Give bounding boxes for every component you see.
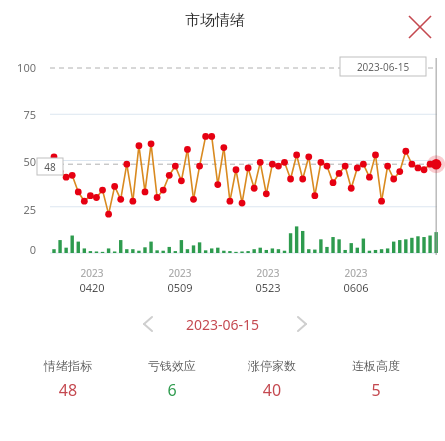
button[interactable]: 连板高度 xyxy=(328,358,424,408)
button[interactable]: 亏钱效应 xyxy=(124,358,220,408)
staticText: 100 xyxy=(4,60,36,75)
staticText: 2023 xyxy=(158,266,202,280)
staticText: 0523 xyxy=(246,280,290,295)
staticText: 50 xyxy=(4,154,36,169)
staticText: 6 xyxy=(124,379,220,401)
button[interactable]: Previous day xyxy=(134,310,162,338)
staticText: 75 xyxy=(4,107,36,122)
staticText: 0509 xyxy=(158,280,202,295)
button[interactable]: Close xyxy=(404,11,436,43)
staticText: 涨停家数 xyxy=(224,358,320,373)
staticText: 2023-06-15 xyxy=(170,315,275,339)
staticText: 40 xyxy=(224,379,320,401)
staticText: 5 xyxy=(328,379,424,401)
staticText: 情绪指标 xyxy=(20,358,116,373)
button[interactable]: Next day xyxy=(288,310,316,338)
staticText: 0606 xyxy=(334,280,378,295)
staticText: 48 xyxy=(37,160,63,177)
staticText: 连板高度 xyxy=(328,358,424,373)
staticText: 市场情绪 xyxy=(185,11,245,30)
staticText: 亏钱效应 xyxy=(124,358,220,373)
staticText: 2023 xyxy=(246,266,290,280)
button[interactable]: 2023-06-15 xyxy=(170,312,275,336)
button[interactable]: 情绪指标 xyxy=(20,358,116,408)
staticText: 0420 xyxy=(70,280,114,295)
staticText: 2023 xyxy=(70,266,114,280)
staticText: 48 xyxy=(20,379,116,401)
staticText: 2023 xyxy=(334,266,378,280)
button[interactable]: 涨停家数 xyxy=(224,358,320,408)
staticText: 25 xyxy=(4,202,36,217)
staticText: 0 xyxy=(4,242,36,257)
staticText: 2023-06-15 xyxy=(340,60,426,79)
